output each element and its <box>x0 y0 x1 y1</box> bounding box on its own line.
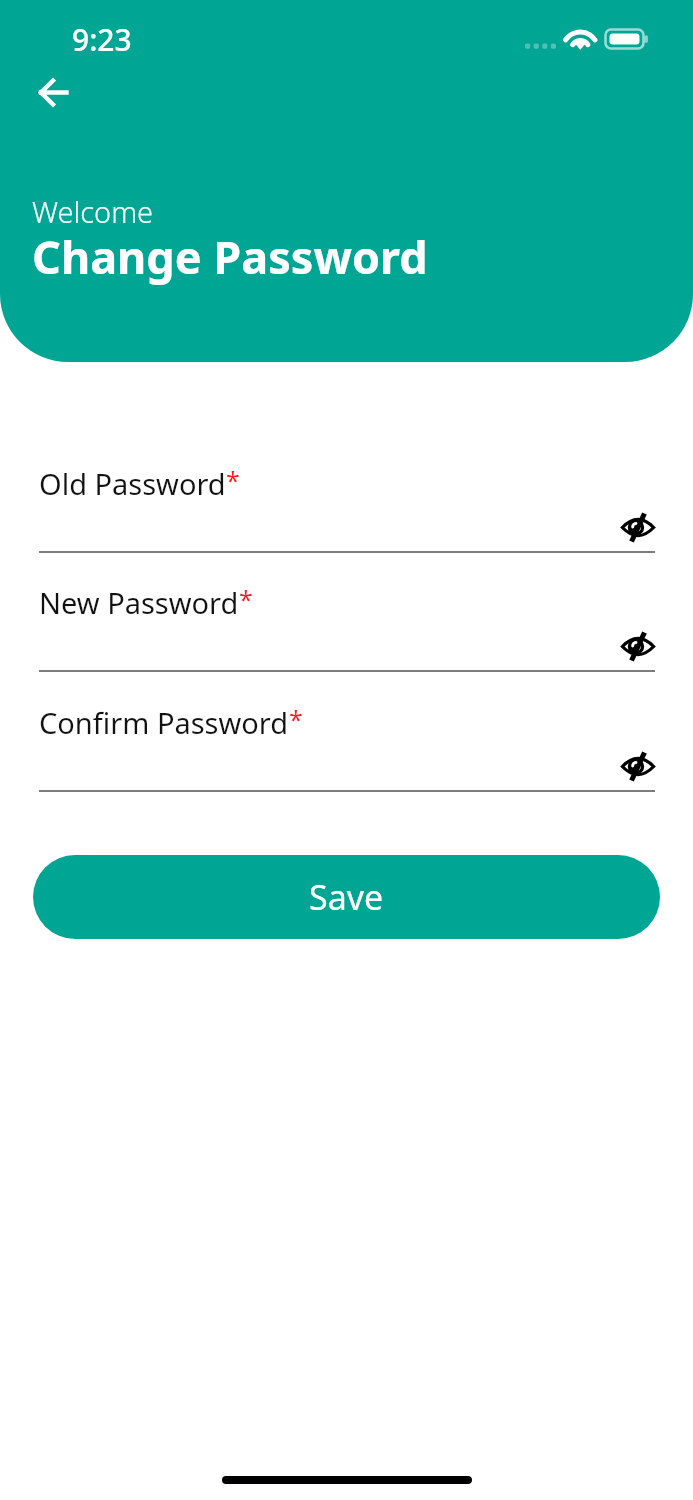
staticText: * <box>239 582 253 616</box>
button[interactable]: Back <box>20 66 76 122</box>
staticText: Save <box>309 874 384 920</box>
staticText: * <box>289 702 303 736</box>
button[interactable]: Toggle password visibility <box>612 745 663 787</box>
staticText: Welcome <box>32 192 154 231</box>
staticText: * <box>226 463 240 497</box>
button[interactable]: Save <box>33 855 660 939</box>
staticText: New Password <box>39 583 239 622</box>
staticText: 9:23 <box>72 19 132 60</box>
staticText: Confirm Password <box>39 703 289 742</box>
button[interactable]: Toggle password visibility <box>612 625 663 667</box>
staticText: Change Password <box>32 226 428 287</box>
staticText: Old Password <box>39 464 226 503</box>
button[interactable]: Toggle password visibility <box>612 506 663 548</box>
